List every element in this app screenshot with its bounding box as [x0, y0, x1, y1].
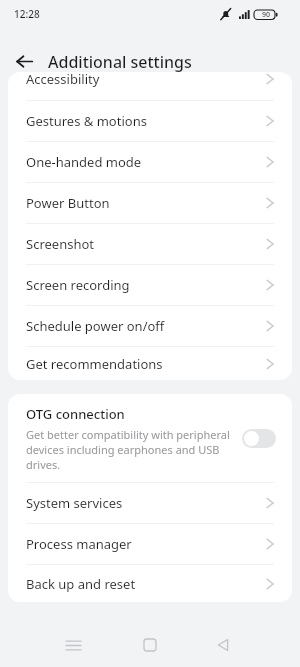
button[interactable]: Schedule power on/off [8, 306, 292, 346]
button[interactable]: Screenshot [8, 224, 292, 264]
staticText: Back up and reset [26, 575, 266, 593]
staticText: Accessibility [26, 72, 100, 88]
button[interactable]: Recent apps [58, 630, 88, 660]
button[interactable]: Process manager [8, 524, 292, 564]
staticText: One-handed mode [26, 153, 266, 171]
button[interactable]: Back [9, 46, 39, 76]
staticText: Power Button [26, 194, 266, 212]
staticText: System services [26, 494, 266, 512]
staticText: Screenshot [26, 235, 266, 253]
staticText: OTG connection [26, 405, 125, 423]
staticText: Get recommendations [26, 355, 266, 373]
button[interactable]: Gestures & motions [8, 101, 292, 141]
button[interactable]: Power Button [8, 183, 292, 223]
button[interactable]: Back [208, 630, 238, 660]
button[interactable]: Screen recording [8, 265, 292, 305]
staticText: Additional settings [48, 51, 192, 73]
button[interactable]: Accessibility [8, 72, 292, 100]
button[interactable]: One-handed mode [8, 142, 292, 182]
staticText: 90 [262, 10, 271, 20]
button[interactable]: Home [135, 630, 165, 660]
button[interactable]: System services [8, 483, 292, 523]
button[interactable]: Get recommendations [8, 347, 292, 380]
button[interactable]: OTG connection toggle [242, 429, 276, 448]
staticText: Get better compatibility with peripheral… [26, 427, 236, 472]
staticText: Gestures & motions [26, 112, 266, 130]
button[interactable]: OTG connection [8, 394, 292, 482]
staticText: 12:28 [14, 7, 40, 21]
staticText: Process manager [26, 535, 266, 553]
button[interactable]: Back up and reset [8, 565, 292, 602]
staticText: Screen recording [26, 276, 266, 294]
staticText: Schedule power on/off [26, 317, 266, 335]
